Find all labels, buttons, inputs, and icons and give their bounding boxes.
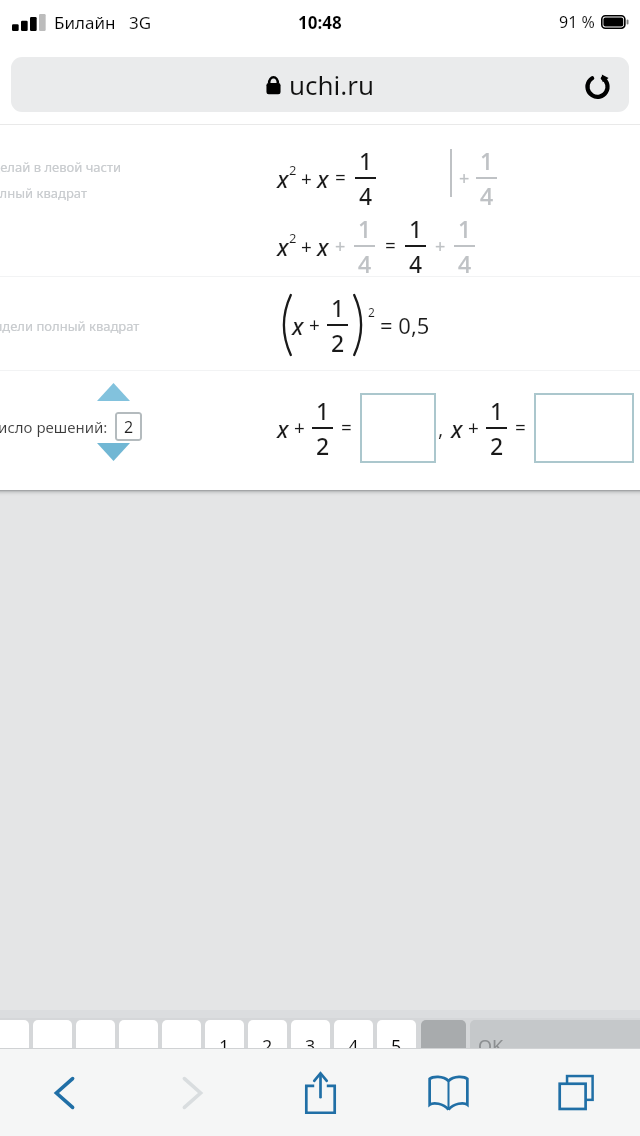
button[interactable]: Key 1 [0, 1020, 29, 1054]
staticText: x [277, 231, 289, 262]
button[interactable]: Key 5 [162, 1020, 201, 1054]
button[interactable]: 2 [115, 412, 142, 441]
staticText: , [438, 415, 444, 442]
button[interactable]: Share [256, 1049, 384, 1136]
staticText: 2 [331, 327, 345, 358]
staticText: OK [478, 1034, 504, 1054]
button[interactable]: Delete [421, 1020, 466, 1054]
staticText: Выдели полный квадрат [0, 317, 140, 335]
button[interactable]: Reload [574, 62, 620, 108]
staticText: 1 [458, 213, 472, 244]
staticText: + [294, 415, 305, 441]
button[interactable]: uchi.ru [11, 57, 629, 112]
staticText: 3G [129, 11, 152, 34]
staticText: 2 [124, 416, 134, 438]
staticText: 2 [289, 161, 297, 179]
staticText: Сделай в левой части [0, 158, 122, 176]
staticText: 1 [331, 292, 345, 323]
staticText: 2 [262, 1034, 273, 1054]
button[interactable]: Answer field 2 [534, 393, 634, 463]
staticText: 1 [480, 145, 494, 176]
staticText: = [341, 415, 352, 441]
staticText: = [335, 165, 346, 191]
staticText: 4 [359, 180, 373, 211]
staticText: Билайн [54, 11, 116, 34]
staticText: x [317, 231, 329, 262]
button[interactable]: Key 4 [119, 1020, 158, 1054]
staticText: x [317, 163, 329, 194]
staticText: x [277, 163, 289, 194]
button[interactable]: Key 2 [33, 1020, 72, 1054]
staticText: + [459, 166, 470, 191]
staticText: x [451, 413, 463, 444]
button[interactable]: Key 3 [76, 1020, 115, 1054]
staticText: 4 [458, 248, 472, 279]
staticText: + [309, 312, 320, 338]
staticText: 1 [316, 395, 330, 426]
staticText: 1 [490, 395, 504, 426]
staticText: 1 [409, 213, 423, 244]
staticText: 91 % [559, 11, 595, 33]
button[interactable]: Tabs [512, 1049, 640, 1136]
staticText: 1 [219, 1034, 230, 1054]
staticText: 4 [480, 180, 494, 211]
button[interactable]: Key 6 [205, 1020, 244, 1054]
button[interactable]: OK [470, 1020, 640, 1054]
staticText: 2 [368, 304, 375, 320]
button[interactable]: Forward [128, 1049, 256, 1136]
staticText: 4 [409, 248, 423, 279]
staticText: 5 [391, 1034, 402, 1054]
staticText: = 0,5 [380, 310, 430, 340]
staticText: x [292, 310, 304, 341]
staticText: 4 [348, 1034, 359, 1054]
staticText: + [435, 234, 446, 259]
staticText: 3 [305, 1034, 316, 1054]
button[interactable]: Answer field 1 [360, 393, 436, 463]
button[interactable]: Bookmarks [384, 1049, 512, 1136]
staticText: + [335, 234, 346, 259]
staticText: 1 [358, 213, 372, 244]
staticText: x [277, 413, 289, 444]
button[interactable]: Key 10 [377, 1020, 416, 1054]
button[interactable]: Key 8 [291, 1020, 330, 1054]
staticText: 4 [358, 248, 372, 279]
staticText: = [385, 233, 396, 259]
staticText: + [301, 166, 312, 192]
button[interactable]: Decrease solutions [93, 438, 133, 466]
button[interactable]: Increase solutions [93, 378, 133, 406]
staticText: 1 [359, 145, 373, 176]
staticText: = [515, 415, 526, 441]
staticText: 2 [289, 229, 297, 247]
staticText: + [468, 415, 479, 441]
staticText: 2 [490, 430, 504, 461]
staticText: + [301, 234, 312, 260]
staticText: Число решений: [0, 417, 108, 437]
button[interactable]: Key 7 [248, 1020, 287, 1054]
staticText: 10:48 [298, 11, 342, 34]
button[interactable]: Back [0, 1049, 128, 1136]
staticText: полный квадрат [0, 184, 87, 202]
staticText: 2 [316, 430, 330, 461]
button[interactable]: Key 9 [334, 1020, 373, 1054]
staticText: uchi.ru [289, 67, 375, 102]
